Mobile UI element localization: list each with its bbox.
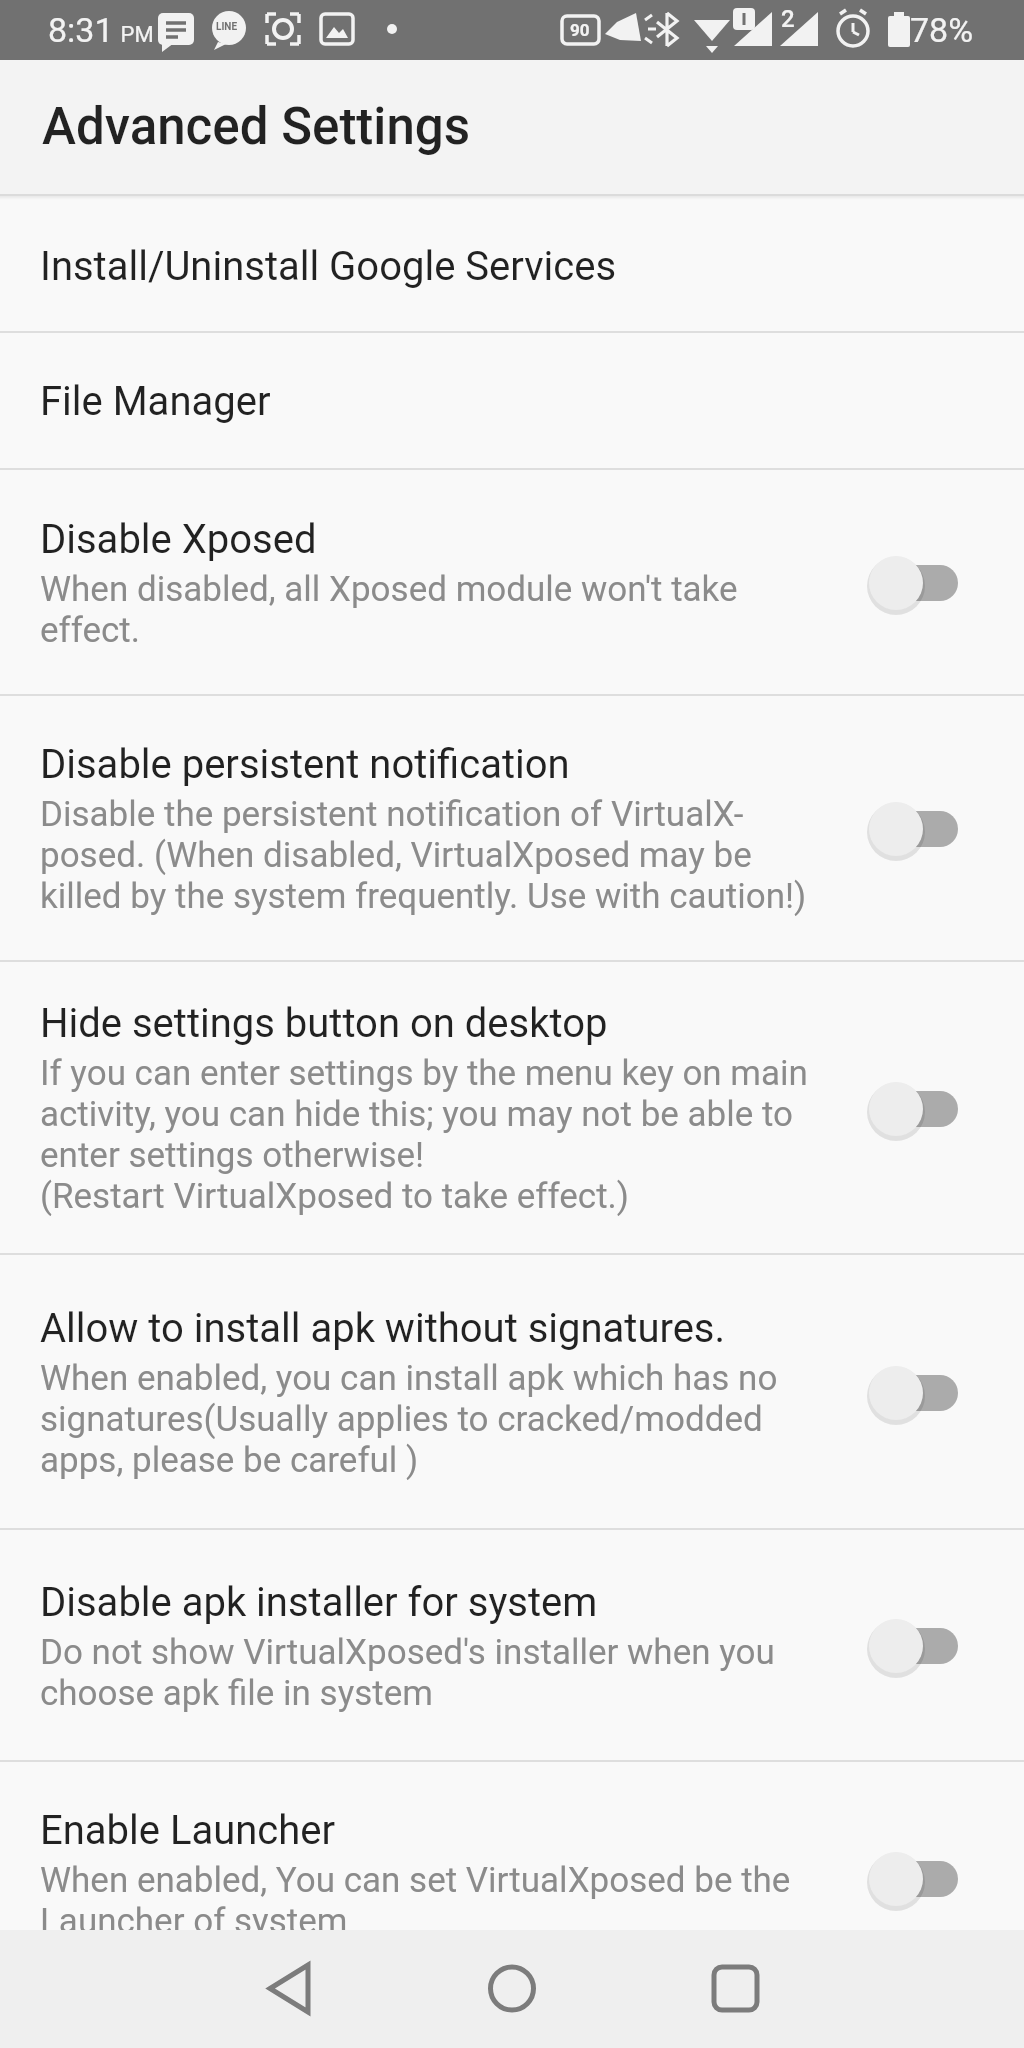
staticText: Disable persistent notification <box>40 741 570 788</box>
button[interactable] <box>858 1078 958 1140</box>
staticText: 8:31 PM <box>48 10 154 50</box>
staticText: Enable Launcher <box>40 1807 336 1854</box>
button[interactable]: Disable persistent notification <box>0 696 1024 962</box>
staticText: 90 <box>570 20 590 40</box>
button[interactable]: Enable Launcher <box>0 1762 1024 2048</box>
staticText: Disable the persistent notification of V… <box>40 794 807 917</box>
button[interactable] <box>858 1848 958 1910</box>
staticText: Install/Uninstall Google Services <box>40 243 617 290</box>
staticText: When disabled, all Xposed module won't t… <box>40 569 738 651</box>
staticText: 78% <box>910 10 974 50</box>
staticText: When enabled, you can install apk which … <box>40 1358 778 1481</box>
button[interactable] <box>858 1615 958 1677</box>
staticText: Allow to install apk without signatures. <box>40 1305 726 1352</box>
staticText: LINE <box>216 21 238 33</box>
staticText: If you can enter settings by the menu ke… <box>40 1053 808 1217</box>
button[interactable]: Install/Uninstall Google Services <box>0 200 1024 333</box>
staticText: File Manager <box>40 378 271 425</box>
button[interactable]: Allow to install apk without signatures. <box>0 1255 1024 1530</box>
staticText: Hide settings button on desktop <box>40 1000 608 1047</box>
button[interactable]: Disable apk installer for system <box>0 1530 1024 1762</box>
button[interactable] <box>858 1362 958 1424</box>
button[interactable] <box>452 1930 572 2048</box>
button[interactable] <box>858 798 958 860</box>
staticText: Do not show VirtualXposed's installer wh… <box>40 1632 775 1714</box>
staticText: Advanced Settings <box>42 97 471 157</box>
button[interactable]: Hide settings button on desktop <box>0 962 1024 1255</box>
staticText: 2 <box>781 5 795 33</box>
staticText: Disable apk installer for system <box>40 1579 598 1626</box>
staticText: When enabled, You can set VirtualXposed … <box>40 1860 791 1942</box>
staticText: Disable Xposed <box>40 516 317 563</box>
button[interactable] <box>858 552 958 614</box>
button[interactable]: Disable Xposed <box>0 470 1024 696</box>
button[interactable]: File Manager <box>0 333 1024 470</box>
